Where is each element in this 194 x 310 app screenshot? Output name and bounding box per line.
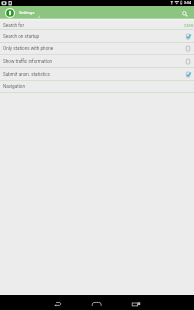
staticText: Settings [19,10,35,15]
button[interactable]: Show traffic information [0,55,194,68]
button[interactable]: Submit anon. statistics [0,68,194,81]
button[interactable]: Navigation [0,80,194,93]
button[interactable]: Recent apps [130,297,142,309]
staticText: 3:54 [184,1,192,5]
button[interactable]: Search on startup [0,30,194,43]
staticText: Submit anon. statistics [3,72,50,77]
staticText: CMS [184,23,194,28]
button[interactable]: Home [90,297,103,310]
staticText: Only stations with phone [3,46,54,51]
button[interactable]: Only stations with phone [0,42,194,55]
staticText: Show traffic information [3,59,53,64]
button[interactable]: Search for [0,17,194,30]
staticText: Search for [3,23,25,28]
button[interactable]: Back [51,297,63,309]
button[interactable]: Search [178,7,192,21]
staticText: Search on startup [3,34,40,39]
staticText: Navigation [3,84,25,89]
